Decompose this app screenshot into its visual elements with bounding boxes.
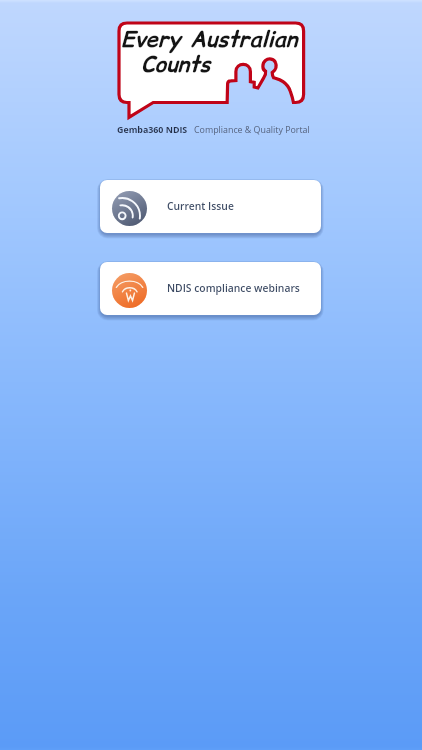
button[interactable]: NDIS compliance webinars [100, 262, 321, 315]
staticText: Compliance & Quality Portal [194, 124, 310, 136]
staticText: Counts [141, 49, 211, 80]
staticText: NDIS compliance webinars [167, 281, 300, 295]
staticText: Current Issue [167, 199, 234, 213]
staticText: Every Australian [121, 24, 298, 55]
staticText: Gemba360 NDIS [117, 124, 188, 136]
button[interactable]: Current Issue [100, 180, 321, 233]
